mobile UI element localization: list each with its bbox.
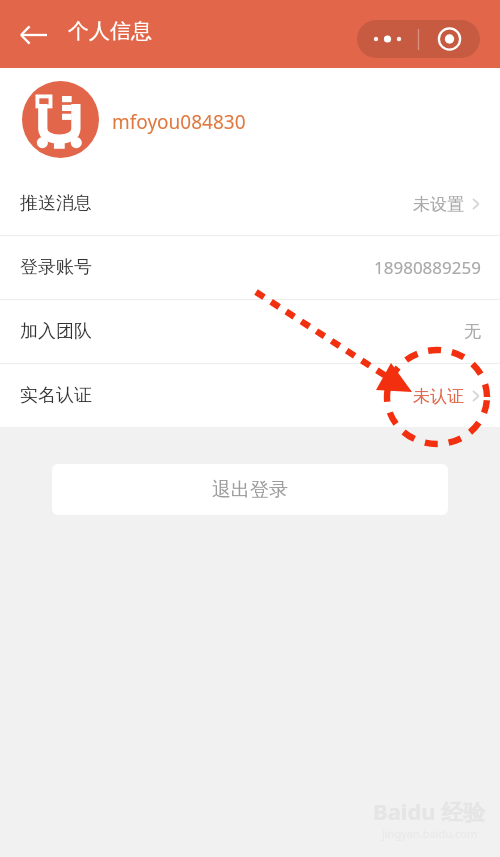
staticText: 未设置 bbox=[413, 194, 464, 215]
button[interactable]: 返回 bbox=[8, 14, 60, 56]
staticText: 推送消息 bbox=[20, 192, 92, 215]
button[interactable]: 实名认证 bbox=[0, 364, 500, 427]
staticText: 未认证 bbox=[413, 386, 464, 407]
staticText: mfoyou084830 bbox=[112, 109, 246, 135]
staticText: 登录账号 bbox=[20, 256, 92, 279]
button[interactable]: 推送消息 bbox=[0, 172, 500, 235]
button[interactable]: 更多 bbox=[357, 20, 418, 58]
staticText: 退出登录 bbox=[212, 478, 288, 502]
button[interactable]: 登录账号 bbox=[0, 236, 500, 299]
staticText: 加入团队 bbox=[20, 320, 92, 343]
button[interactable]: 关闭 bbox=[419, 20, 480, 58]
button[interactable]: 退出登录 bbox=[52, 464, 448, 515]
staticText: 实名认证 bbox=[20, 384, 92, 407]
staticText: 18980889259 bbox=[374, 256, 481, 279]
button[interactable]: 加入团队 bbox=[0, 300, 500, 363]
staticText: 个人信息 bbox=[68, 18, 152, 44]
staticText: 无 bbox=[464, 321, 481, 342]
button[interactable]: mfoyou084830 bbox=[0, 68, 500, 172]
staticText: Baidu 经验 bbox=[373, 796, 486, 826]
